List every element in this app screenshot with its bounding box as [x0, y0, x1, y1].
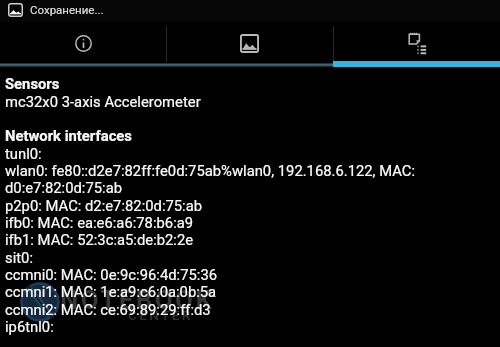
staticText: ip6tnl0:: [5, 318, 54, 335]
staticText: mc32x0 3-axis Accelerometer: [5, 93, 201, 110]
staticText: NOTEBOOK: [60, 285, 215, 315]
button[interactable]: Hardware list tab: [334, 21, 500, 67]
staticText: Сохранение...: [30, 3, 104, 16]
staticText: Sensors: [5, 75, 60, 92]
staticText: CENTER: [128, 307, 193, 323]
staticText: d0:e7:82:0d:75:ab: [5, 179, 123, 196]
staticText: p2p0: MAC: d2:e7:82:0d:75:ab: [5, 197, 203, 214]
staticText: ifb1: MAC: 52:3c:a5:de:b2:2e: [5, 231, 194, 248]
staticText: ifb0: MAC: ea:e6:a6:78:b6:a9: [5, 214, 194, 231]
staticText: Network interfaces: [5, 127, 132, 144]
staticText: ccmni1: MAC: 1e:a9:c6:0a:0b:5a: [5, 283, 217, 300]
staticText: wlan0: fe80::d2e7:82ff:fe0d:75ab%wlan0, …: [5, 162, 416, 179]
staticText: sit0:: [5, 249, 33, 266]
button[interactable]: Display and image tab: [167, 21, 333, 67]
button[interactable]: Device information tab: [0, 21, 166, 67]
other: Saving image notification: [8, 3, 23, 17]
staticText: ccmni0: MAC: 0e:9c:96:4d:75:36: [5, 266, 218, 283]
staticText: ccmni2: MAC: ce:69:89:29:ff:d3: [5, 301, 211, 318]
staticText: tunl0:: [5, 145, 42, 162]
